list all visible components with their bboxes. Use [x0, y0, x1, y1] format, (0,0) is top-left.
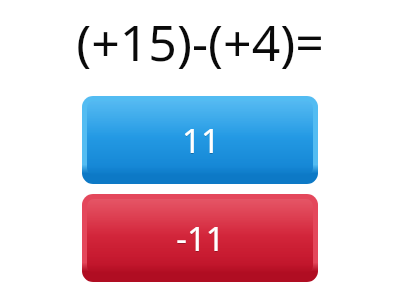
button[interactable]: 11 [82, 96, 318, 184]
staticText: -11 [176, 216, 225, 261]
staticText: 11 [182, 119, 220, 164]
button[interactable]: -11 [82, 194, 318, 282]
staticText: (+15)-(+4)= [76, 8, 324, 76]
staticText: 11 [182, 118, 220, 163]
staticText: -11 [176, 217, 225, 262]
